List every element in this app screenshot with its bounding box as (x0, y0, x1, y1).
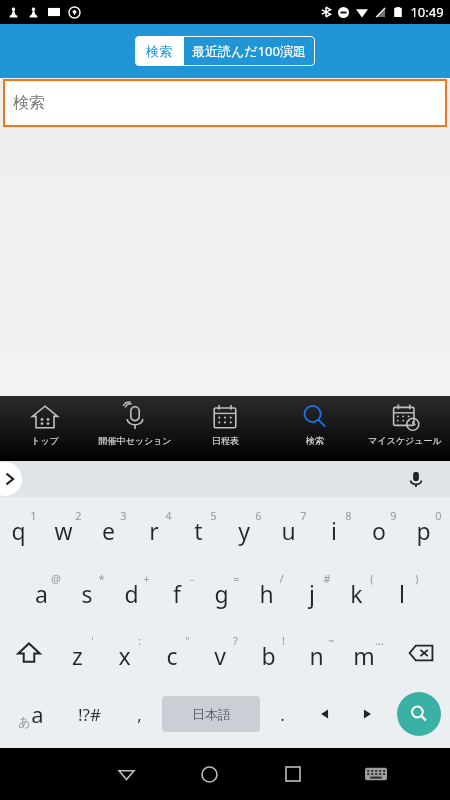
staticText: a (35, 578, 48, 609)
button[interactable]: Back (84, 748, 168, 800)
button[interactable]: g (203, 560, 248, 622)
staticText: あ (18, 714, 31, 729)
staticText: z (72, 640, 83, 671)
button[interactable]: m (344, 622, 392, 684)
button[interactable]: 最近読んだ100演題 (183, 36, 315, 66)
staticText: l (399, 578, 405, 609)
button[interactable]: . (260, 684, 304, 744)
button[interactable]: t (180, 497, 225, 560)
button[interactable]: Home (168, 748, 251, 800)
button[interactable]: Voice input (402, 465, 430, 493)
staticText: p (416, 515, 431, 546)
staticText: 1 (30, 508, 37, 523)
button[interactable]: s (68, 560, 113, 622)
staticText: ! (282, 633, 285, 648)
staticText: t (194, 515, 203, 546)
staticText: 検索 (13, 93, 45, 113)
button[interactable]: z (58, 622, 105, 684)
staticText: 日本語 (192, 706, 231, 722)
staticText: 最近読んだ100演題 (192, 42, 306, 60)
staticText: 検索 (146, 43, 172, 59)
staticText: f (173, 578, 181, 609)
staticText: 8 (345, 508, 352, 523)
button[interactable]: 検索 (270, 396, 360, 461)
staticText: ( (370, 571, 374, 586)
button[interactable]: o (360, 497, 405, 560)
button[interactable]: Shift (0, 622, 58, 684)
button[interactable]: l (383, 560, 428, 622)
staticText: ~ (328, 633, 335, 648)
button[interactable]: !?# (62, 684, 116, 744)
button[interactable]: c (152, 622, 200, 684)
button[interactable]: a (22, 560, 68, 622)
staticText: g (214, 578, 229, 609)
staticText: . (280, 703, 285, 726)
staticText: : (138, 633, 141, 648)
staticText: k (350, 578, 363, 609)
staticText: - (190, 571, 194, 586)
staticText: 開催中セッション (98, 435, 172, 446)
staticText: , (137, 703, 142, 726)
button[interactable]: v (200, 622, 248, 684)
staticText: 3 (120, 508, 127, 523)
button[interactable]: q (0, 497, 45, 560)
staticText: + (143, 571, 150, 586)
staticText: y (238, 515, 250, 546)
button[interactable]: h (248, 560, 293, 622)
staticText: w (54, 515, 73, 546)
staticText: q (11, 515, 26, 546)
button[interactable]: y (225, 497, 270, 560)
button[interactable]: i (315, 497, 360, 560)
button[interactable]: Move cursor right (346, 684, 388, 744)
button[interactable]: トップ (0, 396, 90, 461)
staticText: ? (233, 633, 238, 648)
staticText: 5 (210, 508, 217, 523)
staticText: 検索 (306, 435, 324, 446)
staticText: @ (51, 571, 61, 586)
button[interactable]: x (105, 622, 152, 684)
button[interactable]: Backspace (392, 622, 450, 684)
staticText: 6 (255, 508, 262, 523)
staticText: # (323, 571, 331, 586)
staticText: d (124, 578, 139, 609)
button[interactable]: e (90, 497, 135, 560)
button[interactable]: k (338, 560, 383, 622)
button[interactable]: r (135, 497, 180, 560)
button[interactable]: 日程表 (180, 396, 270, 461)
staticText: " (185, 633, 190, 648)
button[interactable]: 検索 (135, 36, 183, 66)
staticText: a (31, 699, 44, 729)
button[interactable]: あ (0, 684, 62, 744)
button[interactable]: Expand suggestions (0, 462, 22, 496)
button[interactable]: 開催中セッション (90, 396, 180, 461)
staticText: * (98, 571, 105, 586)
button[interactable]: , (116, 684, 162, 744)
button[interactable]: p (405, 497, 450, 560)
staticText: / (279, 571, 284, 586)
button[interactable]: b (248, 622, 296, 684)
staticText: b (261, 640, 276, 671)
staticText: n (309, 640, 324, 671)
button[interactable]: 日本語 (162, 696, 260, 732)
button[interactable]: Recent apps (251, 748, 334, 800)
button[interactable]: u (270, 497, 315, 560)
button[interactable]: Switch keyboard (334, 748, 417, 800)
button[interactable]: w (45, 497, 90, 560)
staticText: j (309, 578, 315, 609)
staticText: u (281, 515, 296, 546)
staticText: e (102, 515, 115, 546)
button[interactable]: マイスケジュール (360, 396, 450, 461)
button[interactable]: f (158, 560, 203, 622)
staticText: 9 (390, 508, 397, 523)
button[interactable]: 検索 (3, 79, 447, 127)
button[interactable]: Move cursor left (304, 684, 346, 744)
button[interactable]: Search (397, 692, 441, 736)
button[interactable]: d (113, 560, 158, 622)
staticText: ' (91, 633, 94, 648)
staticText: m (353, 640, 375, 671)
staticText: 0 (435, 508, 442, 523)
button[interactable]: n (296, 622, 344, 684)
staticText: 4 (165, 508, 172, 523)
button[interactable]: j (293, 560, 338, 622)
staticText: 7 (300, 508, 307, 523)
